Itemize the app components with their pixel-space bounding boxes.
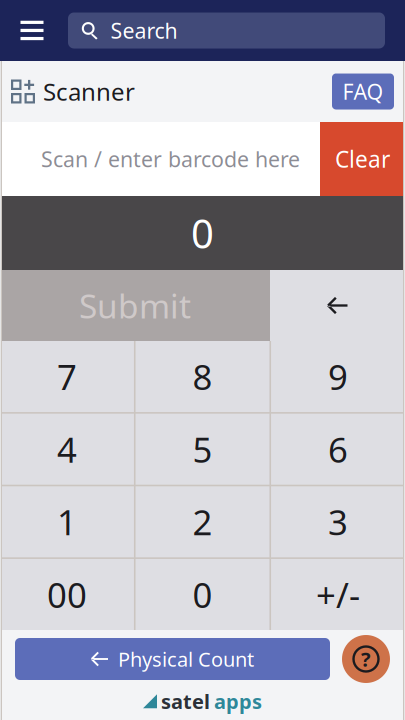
staticText: apps bbox=[214, 688, 262, 715]
staticText: satel bbox=[161, 688, 210, 715]
staticText: Search bbox=[110, 16, 177, 45]
staticText: 0 bbox=[191, 206, 214, 259]
button[interactable]: Backspace bbox=[270, 270, 405, 341]
staticText: 00 bbox=[47, 571, 87, 617]
button[interactable]: Submit bbox=[0, 270, 270, 341]
button[interactable]: Physical Count bbox=[15, 638, 330, 680]
staticText: ? bbox=[361, 646, 371, 672]
button[interactable]: FAQ bbox=[332, 73, 394, 109]
button[interactable]: 1 bbox=[0, 486, 134, 557]
staticText: 0 bbox=[192, 571, 212, 617]
staticText: Scanner bbox=[43, 76, 135, 107]
staticText: 6 bbox=[328, 426, 348, 472]
button[interactable]: 8 bbox=[135, 341, 269, 412]
button[interactable]: 3 bbox=[271, 486, 405, 557]
button[interactable]: Clear bbox=[320, 122, 405, 196]
staticText: +/- bbox=[316, 571, 360, 617]
button[interactable]: 5 bbox=[135, 414, 269, 485]
staticText: Scan / enter barcode here bbox=[41, 145, 300, 173]
staticText: Physical Count bbox=[118, 646, 254, 672]
button[interactable]: 00 bbox=[0, 559, 134, 630]
staticText: 7 bbox=[57, 353, 77, 399]
button[interactable]: 6 bbox=[271, 414, 405, 485]
staticText: Submit bbox=[79, 283, 191, 328]
staticText: 8 bbox=[192, 353, 212, 399]
button[interactable]: Search bbox=[68, 12, 385, 48]
button[interactable]: Help bbox=[342, 635, 390, 683]
staticText: 9 bbox=[328, 353, 348, 399]
staticText: FAQ bbox=[342, 77, 383, 106]
button[interactable]: 4 bbox=[0, 414, 134, 485]
staticText: 1 bbox=[57, 499, 77, 545]
staticText: 5 bbox=[192, 426, 212, 472]
staticText: 3 bbox=[328, 499, 348, 545]
staticText: Clear bbox=[335, 144, 390, 174]
button[interactable]: 0 bbox=[135, 559, 269, 630]
button[interactable]: 9 bbox=[271, 341, 405, 412]
button[interactable]: Menu bbox=[8, 6, 56, 54]
staticText: 4 bbox=[57, 426, 77, 472]
staticText: 2 bbox=[192, 499, 212, 545]
button[interactable]: 7 bbox=[0, 341, 134, 412]
button[interactable]: 2 bbox=[135, 486, 269, 557]
button[interactable]: +/- bbox=[271, 559, 405, 630]
